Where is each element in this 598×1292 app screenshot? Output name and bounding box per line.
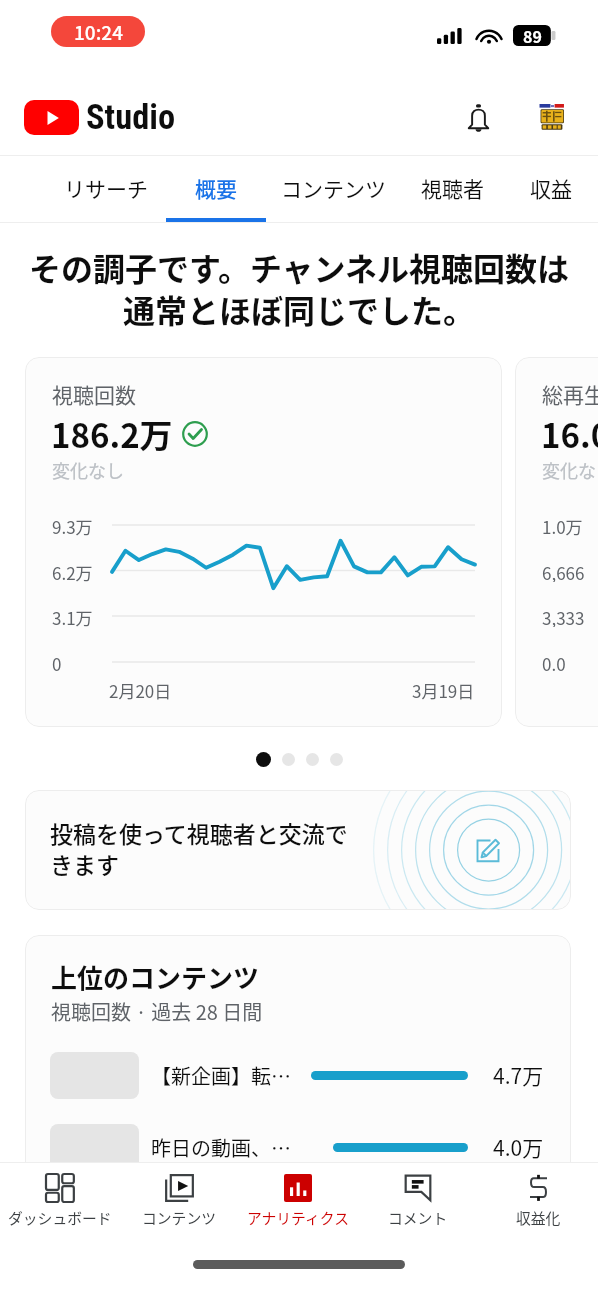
- staticText: 1.0万: [542, 514, 583, 536]
- staticText: 3月19日: [412, 678, 475, 703]
- staticText: 総再生時間(時間): [542, 379, 598, 409]
- staticText: 10:24: [74, 18, 123, 46]
- staticText: 6.2万: [52, 560, 93, 582]
- button[interactable]: 【新企画】転…: [25, 1045, 571, 1105]
- staticText: 収益: [530, 173, 572, 203]
- staticText: 186.2万: [51, 410, 173, 458]
- staticText: 変化なし: [52, 457, 124, 483]
- button[interactable]: コンテンツ: [119, 1163, 238, 1248]
- staticText: ダッシュボード: [8, 1207, 112, 1228]
- staticText: Studio: [86, 97, 176, 137]
- button[interactable]: ダッシュボード: [0, 1163, 119, 1248]
- staticText: 視聴回数: [52, 379, 136, 409]
- staticText: 0.0: [542, 651, 566, 673]
- button[interactable]: Notifications: [453, 92, 503, 142]
- staticText: 4.0万: [493, 1132, 544, 1162]
- button[interactable]: 収益化: [478, 1163, 598, 1248]
- button[interactable]: 視聴者: [401, 156, 504, 222]
- button[interactable]: 概要: [175, 156, 257, 222]
- button[interactable]: アナリティクス: [238, 1163, 358, 1248]
- staticText: 視聴者: [421, 173, 484, 203]
- staticText: 視聴回数 · 過去 28 日間: [51, 997, 263, 1026]
- staticText: 2月20日: [109, 678, 172, 703]
- button[interactable]: コメント: [358, 1163, 478, 1248]
- button[interactable]: 視聴回数: [25, 357, 502, 727]
- button[interactable]: 上位のコンテンツ: [25, 935, 571, 1200]
- staticText: 89: [523, 24, 542, 47]
- staticText: 9.3万: [52, 514, 93, 536]
- staticText: 収益化: [516, 1207, 561, 1228]
- staticText: その調子です。チャンネル視聴回数は 通常とほぼ同じでした。: [10, 244, 588, 332]
- button[interactable]: リサーチ: [44, 156, 168, 222]
- button[interactable]: 投稿を使って視聴者と交流で きます: [25, 790, 571, 910]
- button[interactable]: 昨日の動画、…: [25, 1117, 571, 1177]
- staticText: リサーチ: [64, 173, 148, 203]
- button[interactable]: Account: [532, 97, 572, 137]
- button[interactable]: コンテンツ: [261, 156, 406, 222]
- staticText: 6,666: [542, 560, 585, 582]
- staticText: 0: [52, 651, 62, 673]
- staticText: コメント: [388, 1207, 448, 1228]
- staticText: コンテンツ: [281, 173, 386, 203]
- staticText: 概要: [195, 173, 237, 203]
- staticText: 変化なし: [542, 457, 598, 483]
- staticText: 4.7万: [493, 1060, 544, 1090]
- staticText: 昨日の動画、…: [151, 1133, 291, 1162]
- button[interactable]: 総再生時間(時間): [515, 357, 598, 727]
- staticText: 3,333: [542, 605, 585, 627]
- button[interactable]: Studio: [24, 97, 176, 137]
- button[interactable]: 収益: [510, 156, 592, 222]
- staticText: 上位のコンテンツ: [51, 958, 260, 996]
- staticText: 3.1万: [52, 605, 93, 627]
- staticText: 投稿を使って視聴者と交流で きます: [50, 816, 348, 880]
- staticText: 16.0万: [541, 410, 598, 458]
- staticText: コンテンツ: [142, 1207, 216, 1228]
- staticText: 【新企画】転…: [151, 1061, 291, 1090]
- staticText: アナリティクス: [247, 1207, 349, 1228]
